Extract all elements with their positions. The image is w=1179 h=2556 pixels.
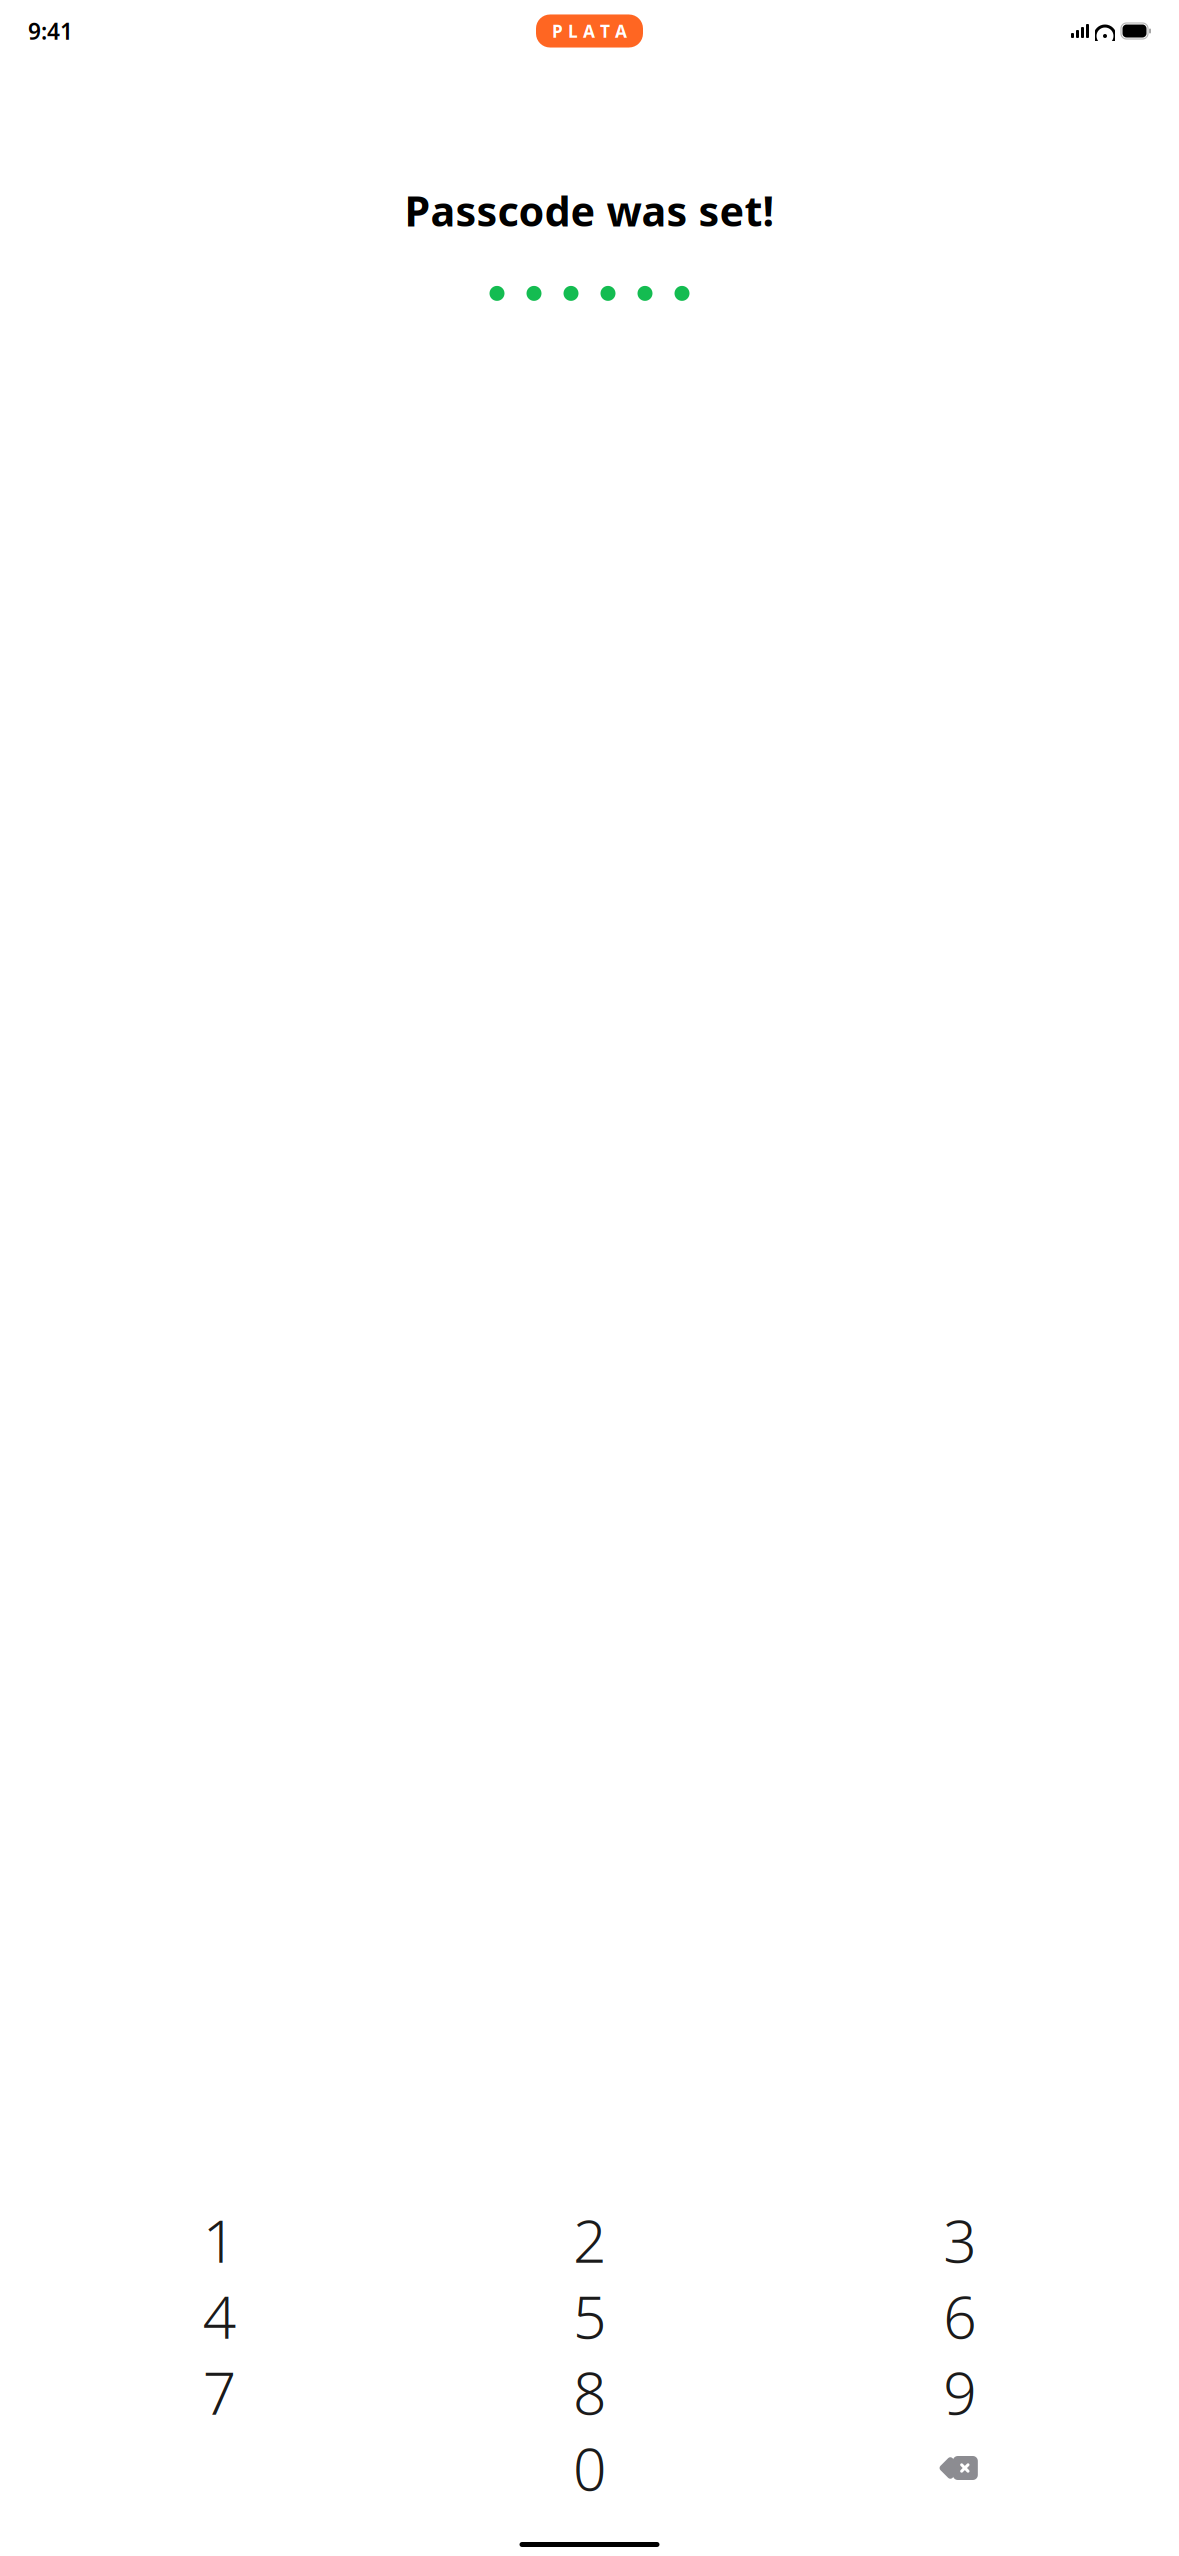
staticText: 0	[573, 2429, 606, 2507]
staticText: Passcode was set!	[404, 183, 774, 238]
button[interactable]: 0	[404, 2430, 775, 2506]
staticText: 4	[203, 2277, 236, 2355]
staticText: 3	[943, 2201, 976, 2279]
button[interactable]: 4	[34, 2278, 404, 2354]
button[interactable]: 7	[34, 2354, 404, 2430]
button[interactable]: 3	[775, 2202, 1145, 2278]
staticText: 5	[573, 2277, 606, 2355]
staticText: 6	[943, 2277, 976, 2355]
staticText: 8	[573, 2353, 606, 2431]
button[interactable]: 8	[404, 2354, 775, 2430]
staticText: 9	[943, 2353, 976, 2431]
button[interactable]: 2	[404, 2202, 775, 2278]
staticText: 1	[203, 2201, 236, 2279]
button[interactable]: Delete	[775, 2430, 1145, 2506]
button[interactable]: 6	[775, 2278, 1145, 2354]
button[interactable]: 9	[775, 2354, 1145, 2430]
staticText: 7	[203, 2353, 236, 2431]
staticText: P L A T A	[552, 19, 627, 42]
staticText: 2	[573, 2201, 606, 2279]
staticText: 9:41	[28, 16, 73, 46]
button[interactable]: 5	[404, 2278, 775, 2354]
button[interactable]: 1	[34, 2202, 404, 2278]
